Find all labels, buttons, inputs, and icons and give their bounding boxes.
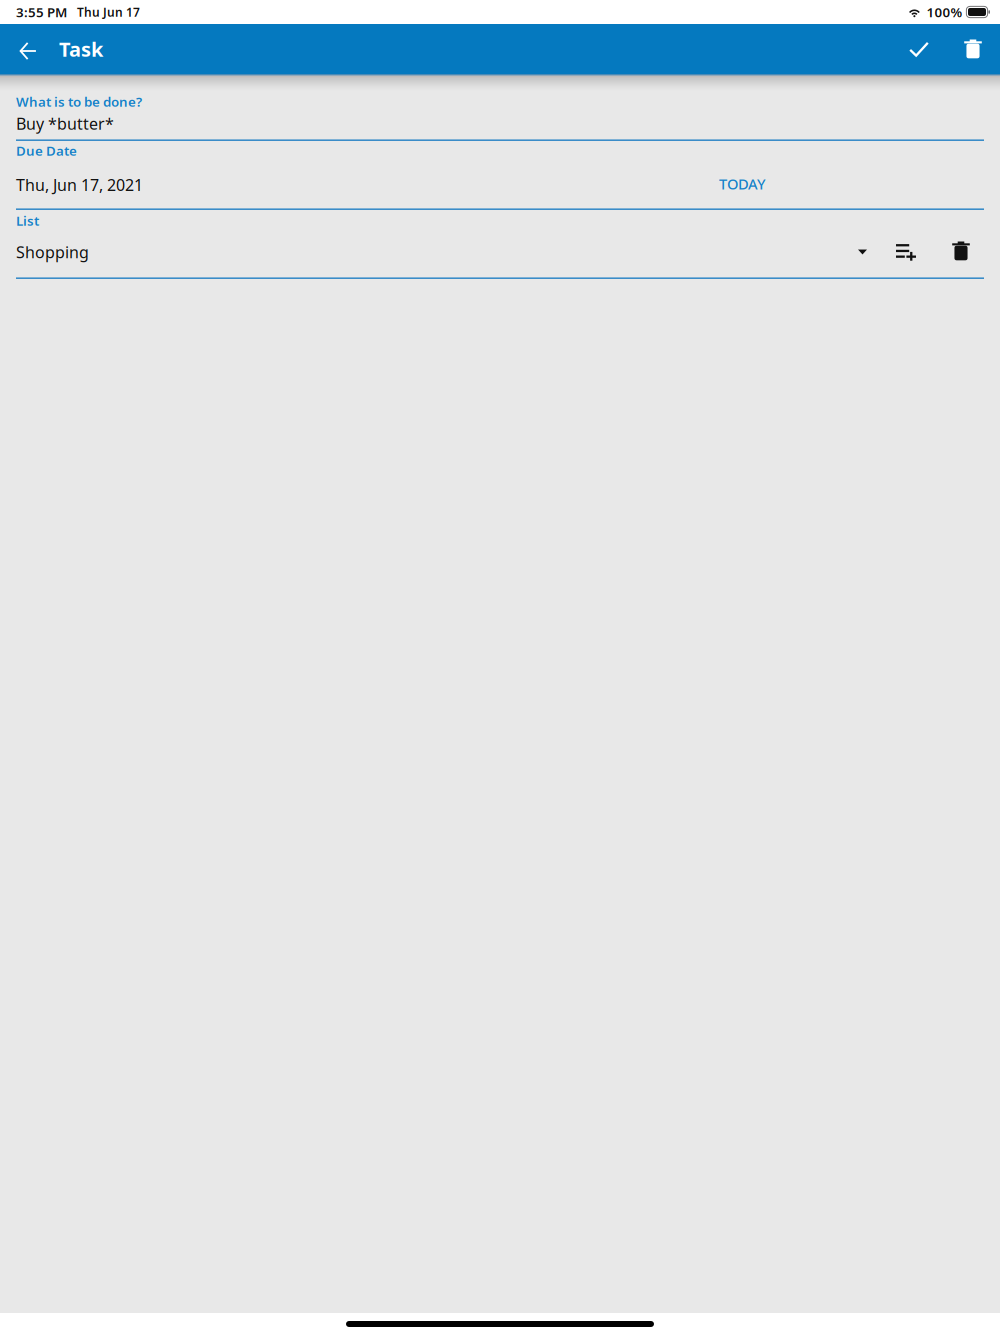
button[interactable]: Create list — [875, 240, 937, 264]
staticText: 100% — [926, 3, 962, 21]
button[interactable]: Back — [0, 24, 56, 74]
staticText: What is to be done? — [16, 93, 142, 110]
staticText: Due Date — [16, 142, 77, 159]
staticText: Thu Jun 17 — [77, 4, 140, 20]
staticText: Thu, Jun 17, 2021 — [16, 174, 143, 195]
button[interactable]: Delete task — [946, 24, 1000, 74]
button[interactable]: Save task — [892, 24, 946, 74]
staticText: Buy *butter* — [16, 113, 114, 134]
staticText: 3:55 PM — [16, 3, 67, 21]
button[interactable]: Delete list — [937, 240, 985, 264]
staticText: Task — [59, 36, 103, 62]
button[interactable]: TODAY — [711, 171, 774, 196]
staticText: TODAY — [719, 174, 766, 193]
staticText: Shopping — [16, 241, 89, 263]
button[interactable]: Choose list — [850, 240, 875, 264]
staticText: List — [16, 212, 39, 229]
